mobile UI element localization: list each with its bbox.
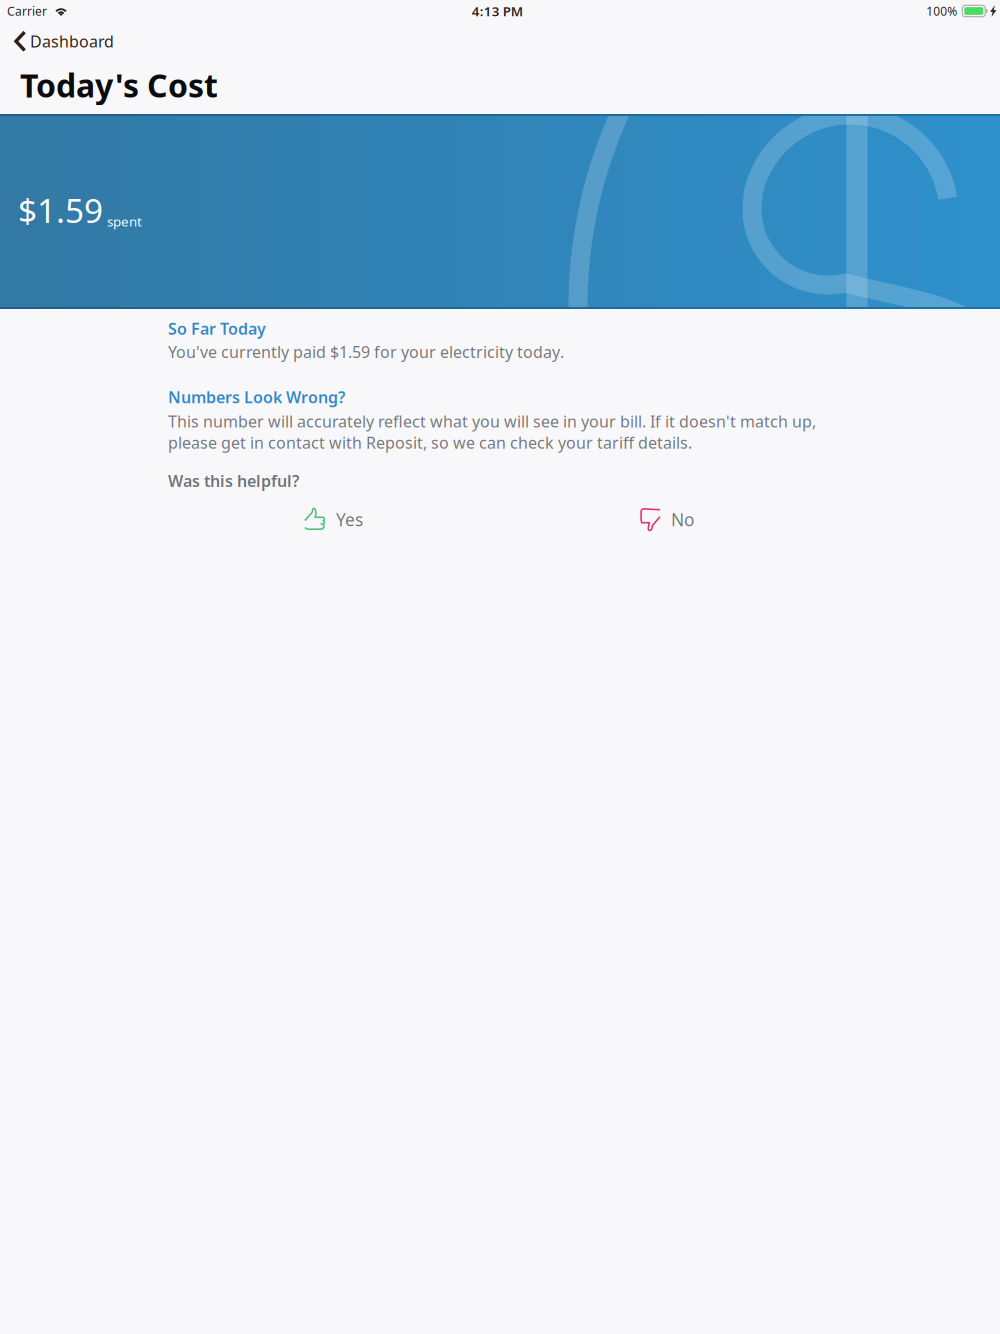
staticText: No: [671, 508, 694, 531]
staticText: Carrier: [7, 3, 47, 19]
staticText: $1.59: [18, 188, 103, 232]
staticText: So Far Today: [168, 318, 266, 339]
staticText: This number will accurately reflect what…: [168, 411, 816, 453]
staticText: 100%: [926, 3, 957, 19]
staticText: Dashboard: [30, 31, 114, 52]
button[interactable]: Yes: [304, 507, 363, 531]
button[interactable]: No: [639, 507, 694, 531]
button[interactable]: Dashboard: [0, 22, 128, 61]
staticText: Yes: [336, 508, 363, 531]
staticText: You've currently paid $1.59 for your ele…: [168, 341, 564, 362]
staticText: Numbers Look Wrong?: [168, 386, 345, 408]
staticText: spent: [107, 213, 142, 230]
staticText: Today's Cost: [20, 64, 218, 106]
staticText: 4:13 PM: [472, 2, 523, 20]
staticText: Was this helpful?: [168, 470, 299, 491]
